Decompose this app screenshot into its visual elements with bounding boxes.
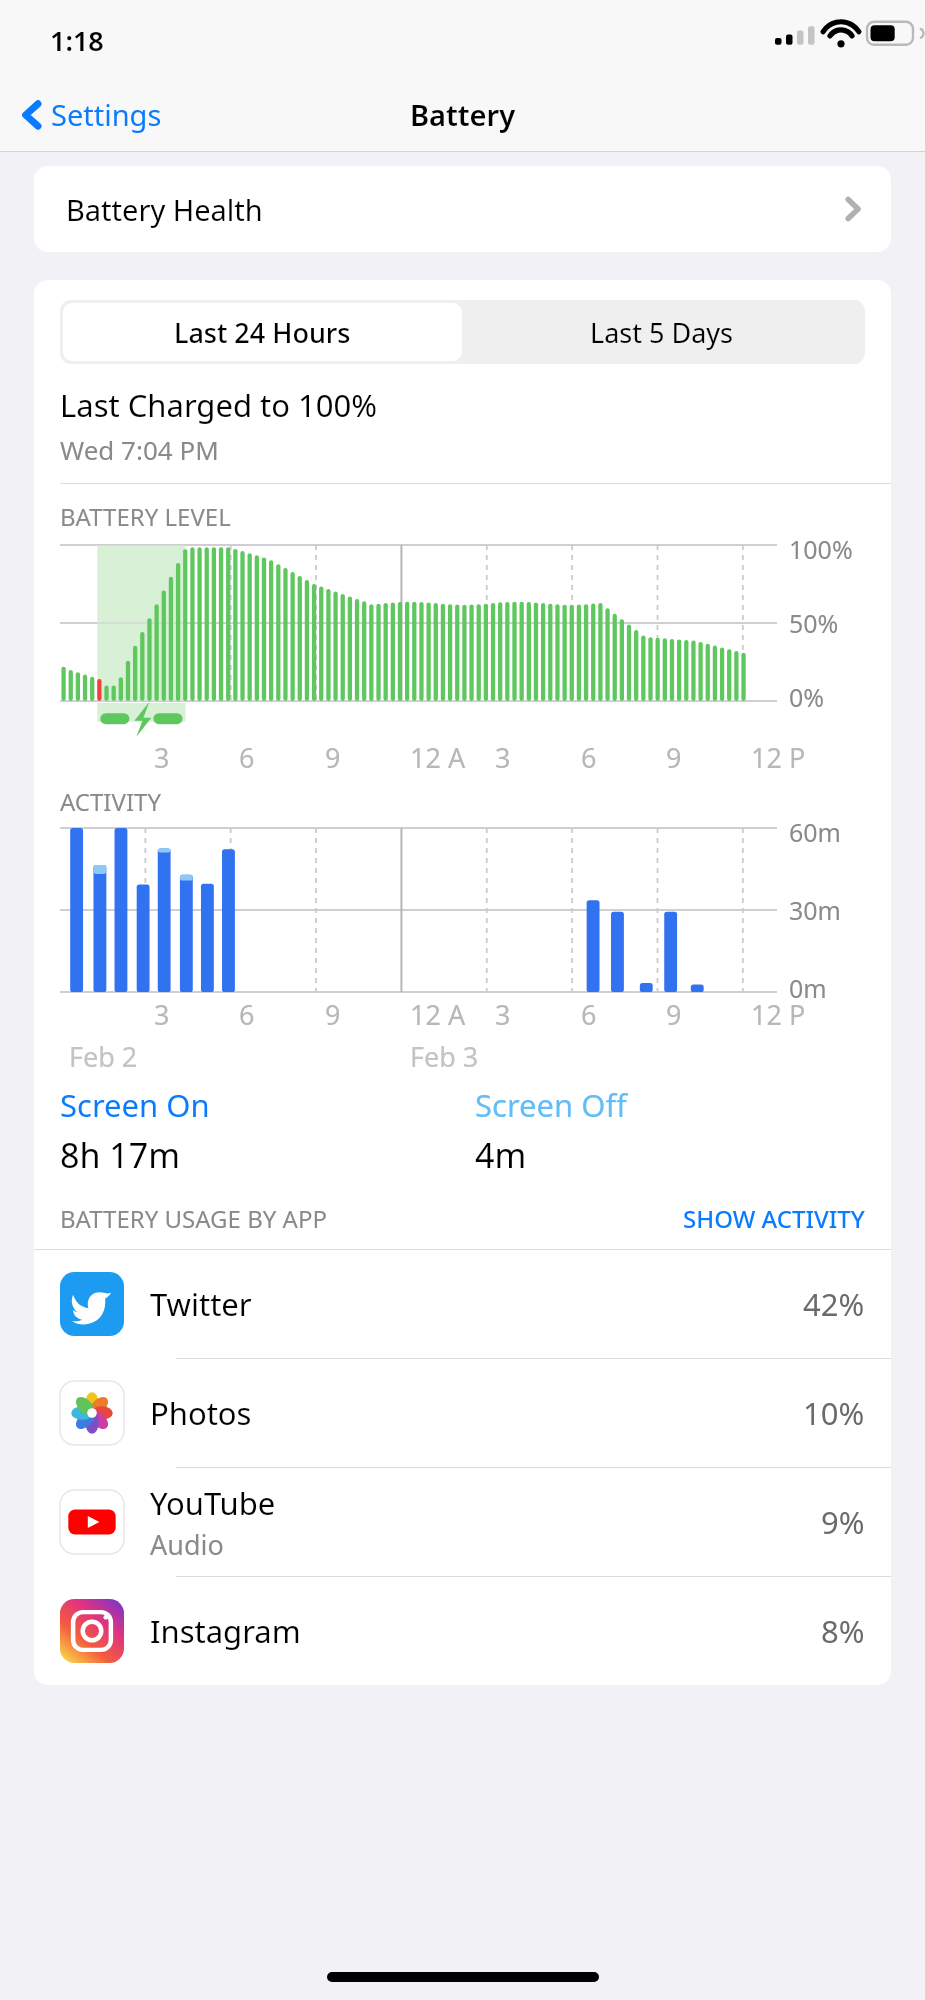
- staticText: 3: [495, 739, 511, 776]
- staticText: ACTIVITY: [60, 785, 161, 818]
- staticText: 8h 17m: [60, 1132, 180, 1178]
- staticText: 0m: [789, 971, 827, 1005]
- staticText: Battery Health: [66, 190, 263, 229]
- staticText: 9: [666, 739, 682, 776]
- staticText: 1:18: [50, 22, 104, 59]
- staticText: YouTube: [150, 1482, 276, 1524]
- staticText: 42%: [803, 1283, 865, 1325]
- staticText: Feb 2: [69, 1038, 138, 1075]
- button[interactable]: Settings: [14, 87, 170, 142]
- staticText: 3: [495, 996, 511, 1033]
- staticText: 6: [581, 996, 597, 1033]
- staticText: 60m: [789, 815, 841, 849]
- staticText: Settings: [51, 95, 162, 134]
- other: Battery Health: [845, 195, 861, 223]
- staticText: 9: [666, 996, 682, 1033]
- staticText: Screen On: [60, 1084, 210, 1126]
- staticText: Screen Off: [475, 1084, 627, 1126]
- staticText: Audio: [150, 1526, 224, 1563]
- staticText: BATTERY LEVEL: [60, 500, 231, 533]
- button[interactable]: Instagram: [34, 1577, 891, 1685]
- button[interactable]: Last 24 Hours: [63, 303, 462, 361]
- staticText: Battery: [410, 95, 516, 134]
- staticText: 3: [154, 739, 170, 776]
- staticText: 9: [325, 739, 341, 776]
- button[interactable]: Photos: [34, 1359, 891, 1467]
- button[interactable]: SHOW ACTIVITY: [683, 1202, 865, 1235]
- staticText: 6: [239, 739, 255, 776]
- staticText: 100%: [789, 532, 853, 566]
- staticText: 9: [325, 996, 341, 1033]
- staticText: 8%: [821, 1610, 865, 1652]
- staticText: Twitter: [150, 1283, 252, 1325]
- staticText: 0%: [789, 680, 825, 714]
- staticText: 30m: [789, 893, 841, 927]
- staticText: 3: [154, 996, 170, 1033]
- staticText: 10%: [803, 1392, 865, 1434]
- staticText: 50%: [789, 606, 839, 640]
- staticText: 9%: [821, 1501, 865, 1543]
- staticText: 6: [239, 996, 255, 1033]
- staticText: Wed 7:04 PM: [60, 432, 219, 467]
- staticText: 12 P: [751, 996, 806, 1033]
- staticText: 12 P: [751, 739, 806, 776]
- staticText: Feb 3: [410, 1038, 479, 1075]
- staticText: 12 A: [410, 996, 466, 1033]
- staticText: SHOW ACTIVITY: [683, 1202, 865, 1235]
- staticText: Last 5 Days: [590, 314, 734, 351]
- staticText: Last Charged to 100%: [60, 384, 378, 426]
- staticText: 4m: [475, 1132, 527, 1178]
- button[interactable]: Battery Health: [34, 166, 891, 252]
- staticText: BATTERY USAGE BY APP: [60, 1202, 327, 1235]
- staticText: 12 A: [410, 739, 466, 776]
- staticText: Instagram: [150, 1610, 301, 1652]
- button[interactable]: YouTube: [34, 1468, 891, 1576]
- button[interactable]: Twitter: [34, 1250, 891, 1358]
- button[interactable]: Last 5 Days: [462, 303, 862, 361]
- staticText: 6: [581, 739, 597, 776]
- staticText: Photos: [150, 1392, 252, 1434]
- staticText: Last 24 Hours: [174, 314, 351, 351]
